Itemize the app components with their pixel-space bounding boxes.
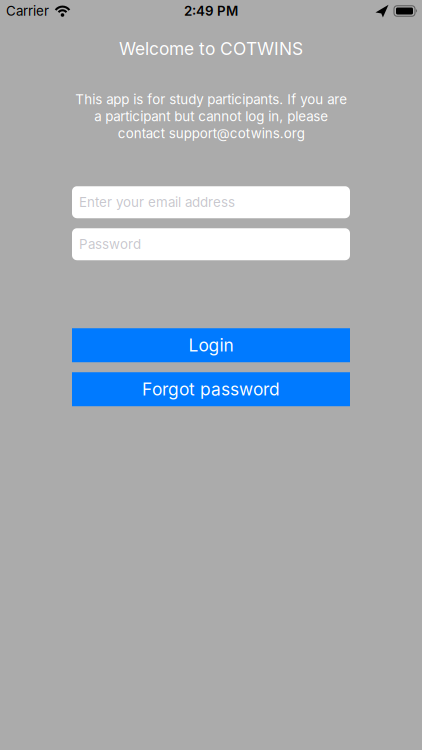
staticText: 2:49 PM	[184, 3, 238, 19]
button[interactable]: Password	[72, 228, 350, 260]
staticText: Welcome to COTWINS	[119, 38, 303, 59]
staticText: Password	[79, 236, 141, 252]
staticText: Login	[188, 335, 233, 355]
button[interactable]: Forgot password	[72, 372, 350, 406]
staticText: Carrier	[6, 3, 49, 19]
button[interactable]: Login	[72, 328, 350, 362]
button[interactable]: Enter your email address	[72, 186, 350, 218]
staticText: This app is for study participants. If y…	[75, 91, 347, 141]
staticText: Forgot password	[142, 379, 280, 399]
staticText: Enter your email address	[79, 194, 235, 210]
